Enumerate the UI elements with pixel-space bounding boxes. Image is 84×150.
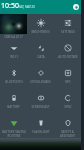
button[interactable]: SAFETY & ASSISTANT	[54, 114, 81, 138]
staticText: 10:50	[1, 1, 19, 11]
button[interactable]: WI-FI	[0, 39, 27, 64]
button[interactable]: GPS/GLONASS	[27, 64, 54, 89]
staticText: FLASHLIGHT	[32, 130, 50, 134]
button[interactable]: DATA	[27, 39, 54, 64]
staticText: DATA	[37, 55, 45, 59]
button[interactable]: BRIGHTNESS	[27, 14, 54, 39]
staticText: OMEGA 2017	[4, 35, 23, 39]
button[interactable]: SCREENCAST	[27, 89, 54, 114]
staticText: BATTERY SAVING ROUTINE	[2, 130, 26, 138]
staticText: SCREENCAST	[31, 105, 50, 109]
staticText: BRIGHTNESS	[31, 30, 50, 34]
button[interactable]: SETTINGS	[54, 14, 81, 39]
staticText: NFC	[65, 80, 71, 84]
button[interactable]: BATTERY SAVING ROUTINE	[0, 114, 27, 138]
button[interactable]: FLASHLIGHT	[27, 114, 54, 138]
staticText: WI-FI	[10, 55, 18, 59]
staticText: SYNC	[64, 105, 72, 109]
staticText: BLUETOOTH	[5, 80, 23, 84]
button[interactable]: OMEGA 2017	[0, 14, 27, 39]
staticText: SETTINGS	[61, 30, 75, 34]
staticText: GPS/GLONASS	[30, 80, 51, 84]
button[interactable]: Settings	[73, 4, 79, 10]
button[interactable]: BATTERY	[0, 89, 27, 114]
button[interactable]: SYNC	[54, 89, 81, 114]
staticText: AUTO ROTATE	[58, 55, 78, 59]
button[interactable]: BLUETOOTH	[0, 64, 27, 89]
staticText: SAFETY & ASSISTANT	[54, 130, 81, 138]
button[interactable]: AUTO ROTATE	[54, 39, 81, 64]
staticText: SAT, MAY 20	[19, 5, 35, 9]
button[interactable]: NFC	[54, 64, 81, 89]
staticText: BATTERY	[7, 105, 20, 109]
